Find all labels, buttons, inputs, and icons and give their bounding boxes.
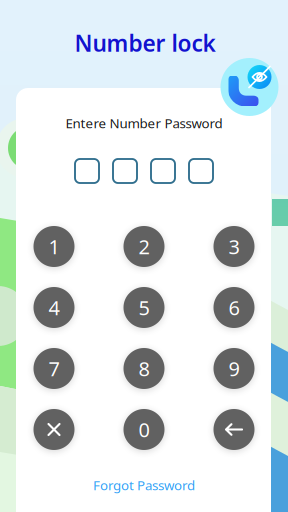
button[interactable]: 8 [123,348,164,389]
button[interactable]: 9 [213,348,254,389]
button[interactable]: 1 [33,226,74,267]
staticText: Number lock [74,28,215,58]
staticText: 7 [48,355,59,382]
staticText: 5 [138,294,149,321]
staticText: 1 [48,233,59,260]
staticText: Forgot Password [93,476,195,494]
staticText: 2 [138,233,149,260]
button[interactable]: 6 [213,287,254,328]
button[interactable]: Clear [33,409,74,450]
button[interactable]: 5 [123,287,164,328]
button[interactable]: 4 [33,287,74,328]
button[interactable]: 3 [213,226,254,267]
staticText: 3 [228,233,239,260]
staticText: 9 [228,355,239,382]
staticText: Entere Number Password [65,114,222,132]
button[interactable]: Backspace [213,409,254,450]
staticText: 6 [228,294,239,321]
staticText: 4 [48,294,59,321]
button[interactable]: 0 [123,409,164,450]
staticText: 0 [138,416,149,443]
button[interactable]: Forgot Password [93,476,195,494]
button[interactable]: 7 [33,348,74,389]
staticText: 8 [138,355,149,382]
button[interactable]: 2 [123,226,164,267]
